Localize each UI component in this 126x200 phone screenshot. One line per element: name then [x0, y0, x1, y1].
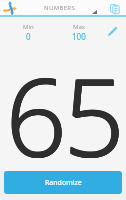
button[interactable]: Copy [108, 0, 122, 17]
staticText: 65 [1, 43, 126, 163]
staticText: 65 [1, 42, 126, 162]
button[interactable]: Min [6, 19, 51, 41]
button[interactable]: Randomize [4, 171, 122, 194]
staticText: 65 [0, 42, 126, 162]
staticText: 100 [72, 31, 86, 41]
staticText: 65 [1, 42, 126, 162]
staticText: 65 [0, 43, 126, 163]
button[interactable]: Randomly [3, 0, 19, 17]
staticText: Min [23, 23, 34, 31]
staticText: Max [73, 23, 85, 31]
button[interactable]: Edit range [105, 23, 121, 39]
staticText: NUMBERS [44, 4, 76, 12]
staticText: 0 [26, 31, 31, 41]
staticText: 65 [1, 43, 126, 163]
staticText: Randomize [45, 178, 82, 188]
staticText: 65 [1, 43, 126, 163]
staticText: 65 [1, 43, 126, 163]
button[interactable]: Max [56, 19, 101, 41]
staticText: 65 [0, 43, 126, 163]
